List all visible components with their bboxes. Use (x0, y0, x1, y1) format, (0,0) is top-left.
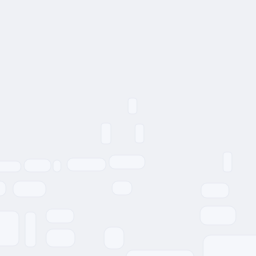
button[interactable]: Chip B1 (0, 181, 6, 196)
button[interactable]: Chip A3 (53, 160, 61, 172)
button[interactable]: Chip A2 (24, 159, 51, 172)
button[interactable]: Bar 2 (101, 123, 111, 144)
button[interactable]: Bar 3 (135, 124, 144, 143)
button[interactable]: Bar 1 (128, 98, 137, 114)
button[interactable]: Chip C5 (104, 227, 124, 249)
button[interactable]: Chip C3 (46, 209, 74, 223)
button[interactable]: Chip A6 (223, 152, 232, 172)
button[interactable]: Chip B3 (112, 181, 132, 195)
button[interactable]: Chip C4 (46, 229, 75, 247)
button[interactable]: Chip B2 (13, 181, 46, 197)
button[interactable]: Chip A5 (109, 155, 145, 169)
button[interactable]: Chip B4 (201, 183, 229, 198)
button[interactable]: Chip A1 (0, 161, 21, 172)
button[interactable]: Card C2 (25, 212, 36, 247)
button[interactable]: Chip A4 (67, 158, 106, 171)
